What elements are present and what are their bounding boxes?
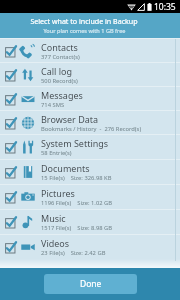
button[interactable]: Toggle selection xyxy=(0,135,180,159)
staticText: 10:35 xyxy=(154,1,176,13)
button[interactable]: Toggle selection xyxy=(0,87,180,110)
staticText: Browser Data xyxy=(41,113,99,125)
staticText: Bookmarks / History - 276 Record(s) xyxy=(41,125,142,133)
staticText: 15 File(s) Size: 326.98 KB xyxy=(41,174,112,182)
staticText: Pictures xyxy=(41,187,75,199)
staticText: 58 Entrie(s) xyxy=(41,149,72,157)
staticText: 714 SMS xyxy=(41,101,65,109)
staticText: 377 Contact(s) xyxy=(41,53,80,61)
staticText: Documents xyxy=(41,162,90,174)
staticText: 500 Record(s) xyxy=(41,77,78,85)
staticText: Videos xyxy=(41,237,70,249)
button[interactable]: Toggle selection xyxy=(0,39,180,62)
staticText: Messages xyxy=(41,89,83,101)
other: Toggle selection xyxy=(5,241,17,253)
staticText: Select what to include in Backup xyxy=(30,16,138,26)
other: Toggle selection xyxy=(5,166,17,178)
staticText: Contacts xyxy=(41,41,78,53)
other: Toggle selection xyxy=(5,141,17,153)
staticText: 23 File(s) Size: 2.42 GB xyxy=(41,249,106,257)
button[interactable]: Toggle selection xyxy=(0,63,180,86)
staticText: System Settings xyxy=(41,137,109,149)
other: Toggle selection xyxy=(5,191,17,203)
staticText: 1517 File(s) Size: 8.98 GB xyxy=(41,224,113,232)
other: Toggle selection xyxy=(5,93,17,105)
button[interactable]: Toggle selection xyxy=(0,111,180,134)
button[interactable]: Toggle selection xyxy=(0,235,180,259)
button[interactable]: Toggle selection xyxy=(0,210,180,234)
staticText: Your plan comes with 1 GB free xyxy=(43,27,126,35)
staticText: 1196 File(s) Size: 1.02 GB xyxy=(41,199,113,207)
staticText: Call log xyxy=(41,65,73,77)
other: Toggle selection xyxy=(5,216,17,228)
other: Toggle selection xyxy=(5,117,17,129)
button[interactable]: Toggle selection xyxy=(0,185,180,209)
other: Toggle selection xyxy=(5,69,17,81)
staticText: Music xyxy=(41,212,66,224)
other: Toggle selection xyxy=(5,45,17,57)
staticText: Done xyxy=(80,278,102,290)
button[interactable]: Done xyxy=(44,274,137,294)
button[interactable]: Toggle selection xyxy=(0,160,180,184)
